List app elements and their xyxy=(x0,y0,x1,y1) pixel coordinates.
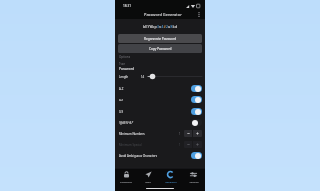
button[interactable]: Copy Password xyxy=(118,44,202,53)
staticText: Regenerate Password xyxy=(144,37,177,41)
button[interactable]: Regenerate Password xyxy=(118,34,202,43)
staticText: Copy Password xyxy=(149,47,172,51)
staticText: A-Z xyxy=(119,87,124,91)
button[interactable]: Generator xyxy=(159,168,182,186)
staticText: Settings xyxy=(189,180,199,183)
staticText: Avoid Ambiguous Characters xyxy=(119,154,158,158)
staticText: Options xyxy=(119,55,131,59)
staticText: Password Generator xyxy=(144,12,182,17)
staticText: Password xyxy=(119,66,135,70)
button[interactable]: Passwords xyxy=(115,168,137,186)
staticText: a-z xyxy=(119,98,123,102)
button[interactable]: More options xyxy=(192,9,205,19)
button[interactable]: Settings xyxy=(182,168,205,186)
button[interactable]: !@#$%^&* xyxy=(115,117,205,128)
staticText: 14 xyxy=(141,75,145,79)
button[interactable]: Decrease xyxy=(184,141,192,148)
button[interactable]: Decrease xyxy=(184,130,192,137)
button[interactable]: Avoid Ambiguous Characters xyxy=(115,150,205,161)
staticText: bEYWkp3v4#2u8kd xyxy=(143,24,178,29)
staticText: Passwords xyxy=(120,180,132,183)
staticText: 18:31 xyxy=(123,4,131,8)
staticText: !@#$%^&* xyxy=(119,121,134,125)
staticText: 1 xyxy=(179,143,181,147)
staticText: Type xyxy=(119,62,125,65)
button[interactable]: a-z xyxy=(115,94,205,105)
staticText: Minimum Special xyxy=(119,143,142,147)
button[interactable]: 0-9 xyxy=(115,106,205,117)
button[interactable]: Increase xyxy=(193,130,202,137)
staticText: Minimum Numbers xyxy=(119,132,145,136)
staticText: 0-9 xyxy=(119,110,124,114)
button[interactable]: A-Z xyxy=(115,83,205,94)
button[interactable]: Send xyxy=(137,168,159,186)
staticText: Length xyxy=(119,75,129,79)
staticText: Send xyxy=(145,180,151,183)
button[interactable]: Increase xyxy=(193,141,202,148)
staticText: 1 xyxy=(179,132,181,136)
staticText: Generator xyxy=(165,180,177,183)
